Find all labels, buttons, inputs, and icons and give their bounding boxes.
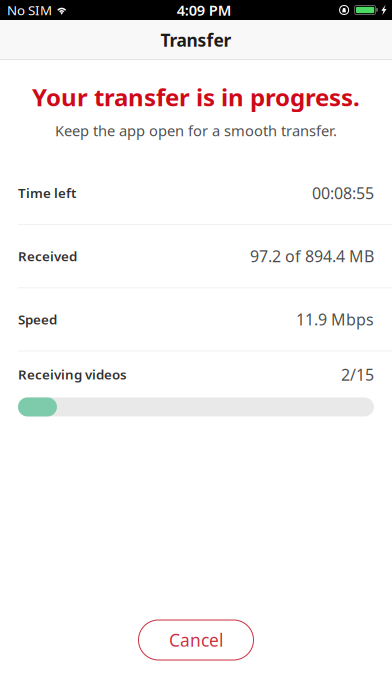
staticText: No SIM [7,1,52,19]
staticText: Keep the app open for a smooth transfer. [55,121,337,140]
staticText: 11.9 Mbps [296,309,374,330]
staticText: Transfer [160,28,231,51]
staticText: Receiving videos [18,366,127,383]
staticText: Your transfer is in progress. [32,81,360,113]
staticText: 00:08:55 [312,182,374,203]
staticText: Speed [18,310,57,328]
staticText: 97.2 of 894.4 MB [250,245,374,267]
staticText: 2/15 [341,364,374,385]
button[interactable]: Cancel [138,620,253,660]
staticText: Cancel [169,628,223,651]
staticText: Received [18,247,77,265]
staticText: 4:09 PM [177,0,232,20]
staticText: Time left [18,184,76,202]
